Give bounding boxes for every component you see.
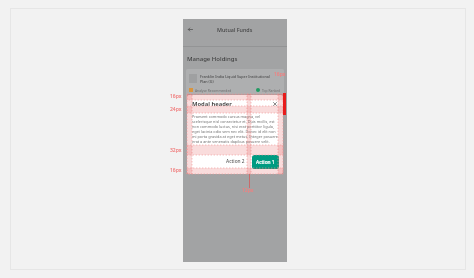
staticText: 16px	[274, 71, 286, 78]
staticText: 12px	[242, 187, 254, 194]
staticText: 24px	[170, 106, 182, 113]
staticText: Mutual Funds	[217, 26, 253, 33]
staticText: Modal header	[192, 100, 232, 108]
staticText: Manage Holdings	[187, 55, 238, 63]
button[interactable]: Close	[272, 101, 278, 107]
staticText: Analyse Recommended	[195, 88, 232, 92]
staticText: Top Ranked	[262, 88, 281, 92]
staticText: 16px	[170, 167, 182, 174]
button[interactable]: Action 1	[252, 155, 279, 169]
button[interactable]: Action 2	[223, 155, 248, 168]
staticText: 32px	[170, 147, 182, 154]
staticText: Praesent commodo cursus magna, vel scele…	[192, 114, 278, 144]
staticText: Action 2	[226, 158, 245, 165]
staticText: Action 1	[256, 159, 275, 166]
staticText: 16px	[170, 93, 182, 100]
button[interactable]: Back	[185, 24, 196, 35]
staticText: Franklin India Liquid Super Institutiona…	[200, 74, 276, 84]
button[interactable]: Franklin India Liquid Super Institutiona…	[186, 69, 284, 100]
